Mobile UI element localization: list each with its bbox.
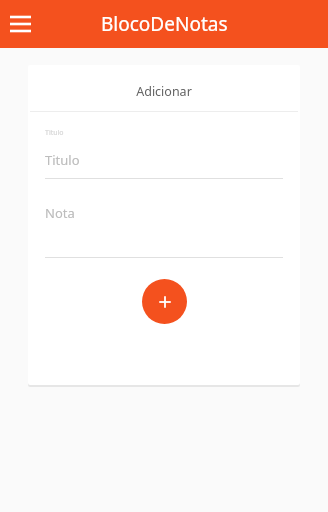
button[interactable]: Titulo — [28, 151, 300, 179]
button[interactable]: Nota — [28, 204, 300, 258]
staticText: Titulo — [45, 151, 80, 169]
button[interactable]: Adicionar nota — [142, 279, 187, 324]
staticText: Nota — [45, 204, 75, 222]
staticText: Titulo — [45, 128, 64, 138]
staticText: Adicionar — [28, 83, 300, 100]
button[interactable]: Open navigation menu — [6, 9, 36, 39]
staticText: BlocoDeNotas — [101, 11, 228, 37]
